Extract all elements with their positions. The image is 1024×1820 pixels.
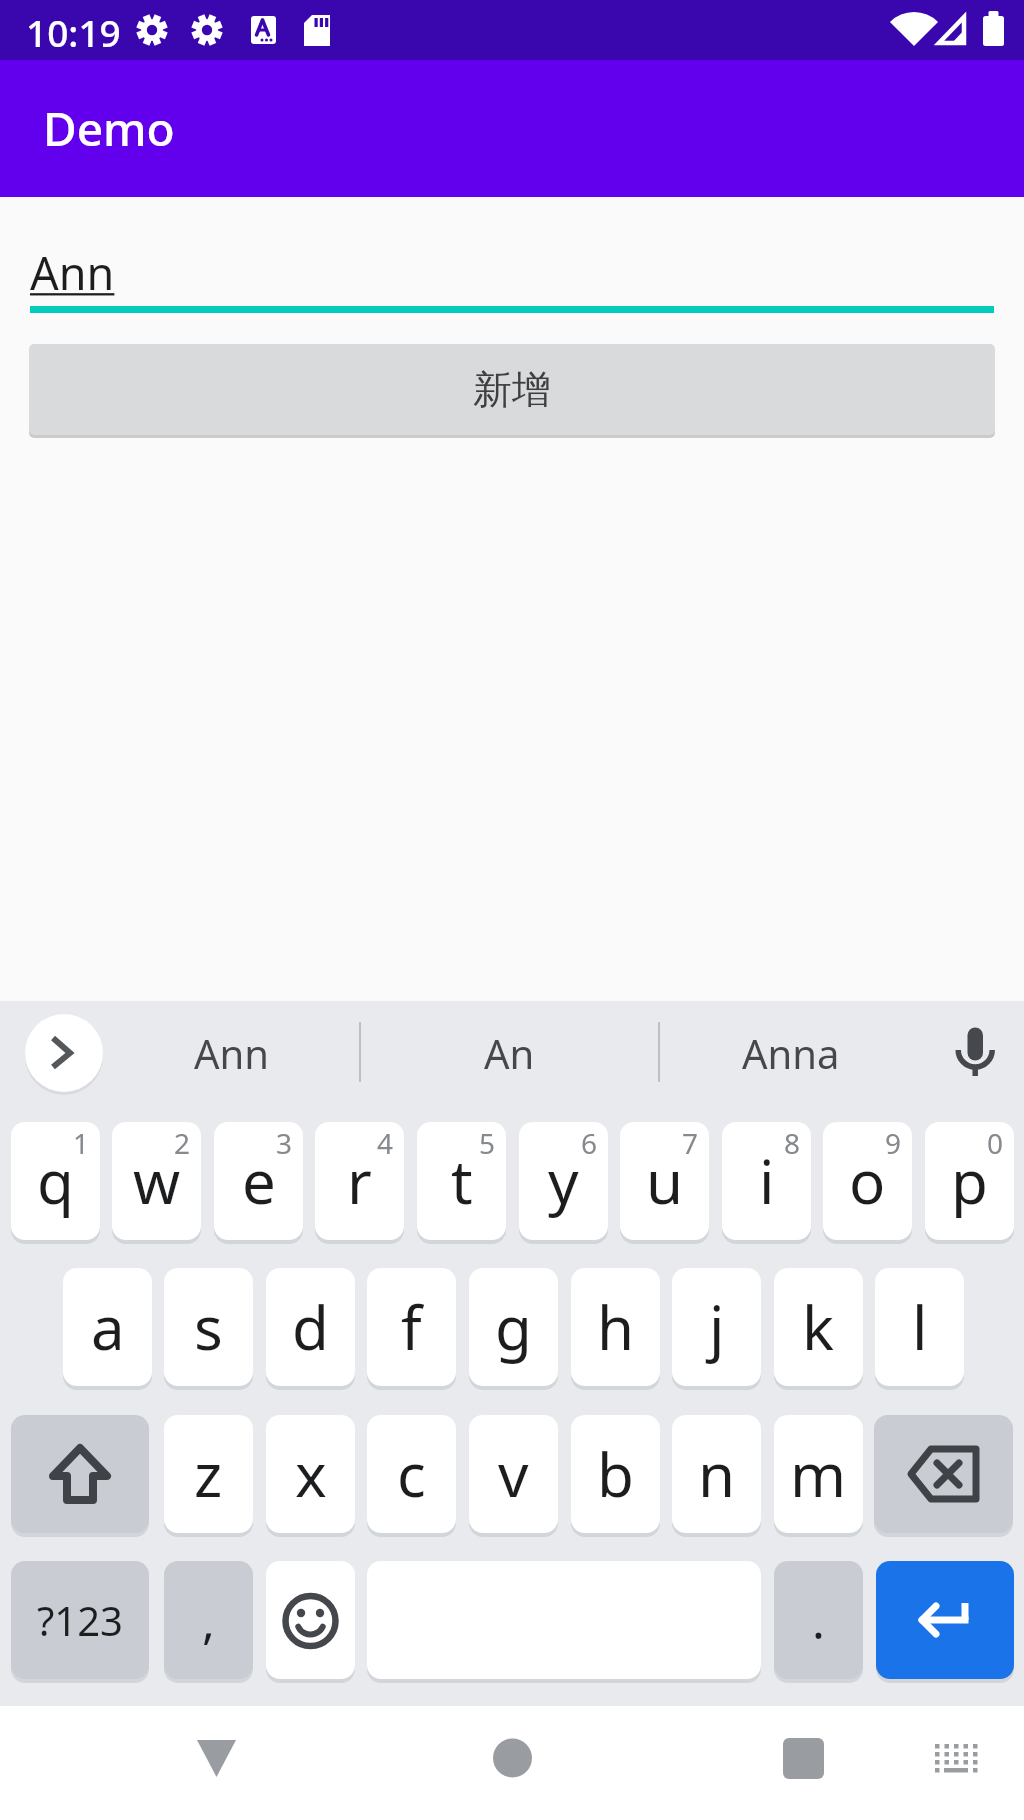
staticText: 6 xyxy=(581,1124,598,1162)
button[interactable]: , xyxy=(164,1561,253,1679)
staticText: c xyxy=(397,1433,426,1515)
staticText: d xyxy=(292,1286,329,1368)
button[interactable]: p xyxy=(925,1122,1014,1240)
staticText: i xyxy=(759,1140,775,1222)
staticText: 新增 xyxy=(473,365,551,414)
staticText: v xyxy=(498,1433,529,1515)
staticText: w xyxy=(133,1140,181,1222)
staticText: b xyxy=(597,1433,634,1515)
button[interactable]: j xyxy=(672,1268,761,1386)
button[interactable]: m xyxy=(774,1415,863,1533)
staticText: e xyxy=(242,1140,276,1222)
staticText: 4 xyxy=(377,1124,394,1162)
button[interactable]: i xyxy=(722,1122,811,1240)
staticText: k xyxy=(802,1286,835,1368)
button[interactable]: s xyxy=(164,1268,253,1386)
staticText: 3 xyxy=(276,1124,293,1162)
button[interactable]: w xyxy=(112,1122,201,1240)
button[interactable]: Ann xyxy=(104,1014,359,1092)
button[interactable]: d xyxy=(266,1268,355,1386)
button[interactable]: e xyxy=(214,1122,303,1240)
button[interactable] xyxy=(940,1014,1012,1092)
button[interactable]: h xyxy=(571,1268,660,1386)
button[interactable]: 新增 xyxy=(29,344,995,435)
staticText: n xyxy=(698,1433,736,1515)
staticText: l xyxy=(912,1286,928,1368)
button[interactable] xyxy=(920,1715,996,1791)
button[interactable] xyxy=(462,1710,562,1810)
button[interactable]: . xyxy=(774,1561,863,1679)
button[interactable]: t xyxy=(417,1122,506,1240)
button[interactable] xyxy=(876,1561,1014,1679)
staticText: t xyxy=(451,1140,473,1222)
button[interactable] xyxy=(753,1710,853,1810)
staticText: o xyxy=(849,1140,886,1222)
staticText: j xyxy=(709,1286,725,1368)
staticText: 1 xyxy=(73,1124,90,1162)
staticText: Anna xyxy=(742,1026,840,1080)
staticText: u xyxy=(646,1140,684,1222)
staticText: Demo xyxy=(43,97,175,160)
button[interactable]: u xyxy=(620,1122,709,1240)
button[interactable]: n xyxy=(672,1415,761,1533)
staticText: y xyxy=(548,1140,579,1222)
button[interactable] xyxy=(266,1561,355,1679)
staticText: , xyxy=(202,1588,215,1653)
button[interactable]: x xyxy=(266,1415,355,1533)
staticText: 10:19 xyxy=(26,7,121,57)
button[interactable]: a xyxy=(63,1268,152,1386)
staticText: x xyxy=(295,1433,327,1515)
button[interactable]: y xyxy=(519,1122,608,1240)
staticText: a xyxy=(91,1286,125,1368)
staticText: f xyxy=(401,1286,422,1368)
button[interactable]: l xyxy=(875,1268,964,1386)
button[interactable] xyxy=(166,1710,266,1810)
staticText: p xyxy=(951,1140,988,1222)
staticText: r xyxy=(347,1140,372,1222)
staticText: 7 xyxy=(682,1124,699,1162)
button[interactable]: g xyxy=(469,1268,558,1386)
button[interactable]: o xyxy=(823,1122,912,1240)
staticText: h xyxy=(597,1286,635,1368)
staticText: 8 xyxy=(784,1124,801,1162)
staticText: z xyxy=(194,1433,223,1515)
staticText: 5 xyxy=(479,1124,496,1162)
button[interactable]: An xyxy=(361,1014,658,1092)
staticText: ?123 xyxy=(37,1593,123,1647)
button[interactable]: Anna xyxy=(660,1014,922,1092)
button[interactable]: z xyxy=(164,1415,253,1533)
button[interactable] xyxy=(11,1415,149,1533)
button[interactable]: r xyxy=(315,1122,404,1240)
staticText: An xyxy=(484,1026,535,1080)
staticText: Ann xyxy=(30,242,115,303)
staticText: Ann xyxy=(194,1026,269,1080)
button[interactable] xyxy=(874,1415,1013,1533)
button[interactable] xyxy=(25,1014,103,1092)
staticText: s xyxy=(194,1286,223,1368)
staticText: 0 xyxy=(987,1124,1004,1162)
button[interactable]: ?123 xyxy=(11,1561,149,1679)
button[interactable]: k xyxy=(774,1268,863,1386)
staticText: m xyxy=(790,1433,847,1515)
staticText: q xyxy=(37,1140,74,1222)
button[interactable]: c xyxy=(367,1415,456,1533)
button[interactable]: q xyxy=(11,1122,100,1240)
staticText: g xyxy=(495,1286,532,1368)
staticText: 9 xyxy=(885,1124,902,1162)
button[interactable]: v xyxy=(469,1415,558,1533)
staticText: 2 xyxy=(174,1124,191,1162)
button[interactable]: f xyxy=(367,1268,456,1386)
button[interactable]: b xyxy=(571,1415,660,1533)
staticText: . xyxy=(812,1588,825,1653)
